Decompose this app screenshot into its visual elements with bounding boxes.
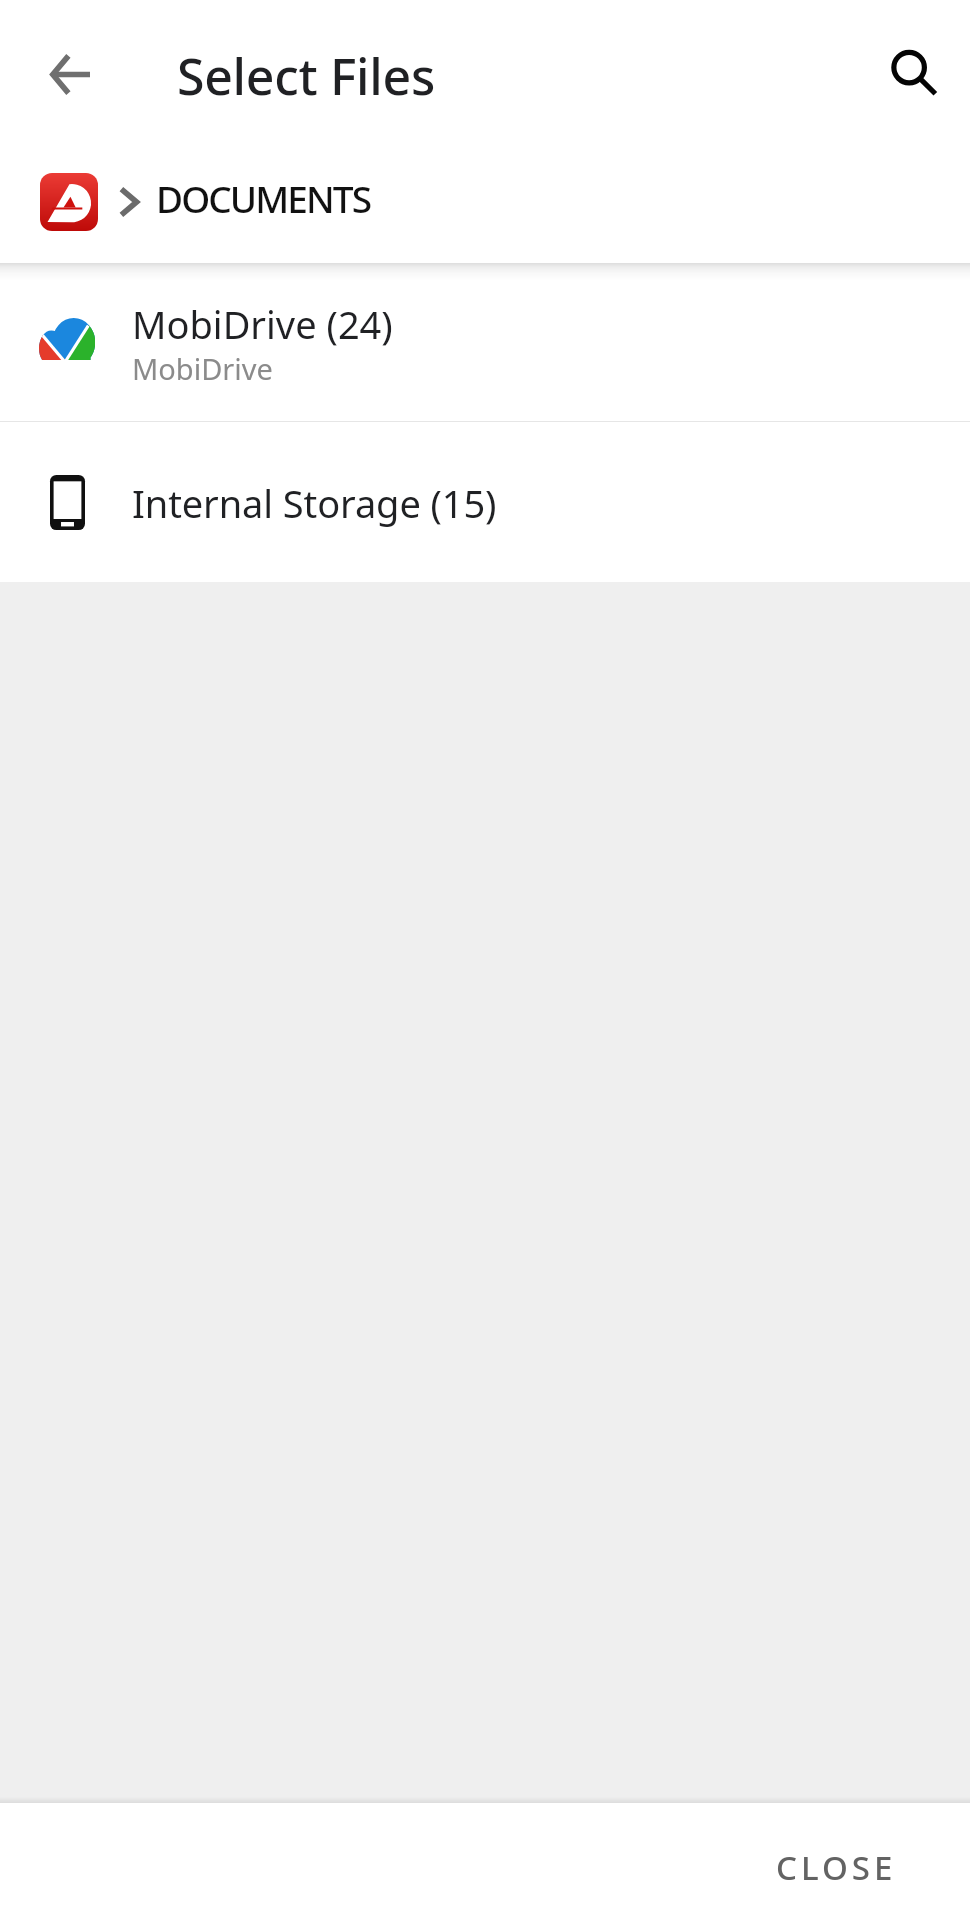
staticText: CLOSE: [776, 1845, 897, 1890]
button[interactable]: DOCUMENTS: [0, 148, 970, 263]
button[interactable]: Back: [26, 30, 114, 118]
button[interactable]: Search: [869, 27, 957, 115]
button[interactable]: CLOSE: [760, 1829, 913, 1906]
staticText: MobiDrive (24): [132, 298, 393, 350]
button[interactable]: MobiDrive (24): [0, 263, 970, 421]
button[interactable]: Internal Storage (15): [0, 421, 970, 582]
staticText: MobiDrive: [132, 349, 273, 388]
staticText: Select Files: [177, 42, 435, 110]
staticText: Internal Storage (15): [132, 477, 497, 529]
staticText: DOCUMENTS: [156, 173, 371, 223]
